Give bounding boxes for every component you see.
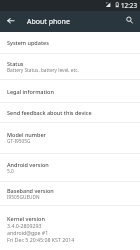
staticText: Battery Status, battery level, etc. bbox=[7, 67, 79, 73]
staticText: I9505GUEUDN bbox=[7, 194, 40, 200]
staticText: Kernel version bbox=[7, 215, 45, 222]
staticText: 5.0 bbox=[7, 168, 14, 174]
button[interactable]: Model number bbox=[0, 123, 140, 153]
staticText: 12:23 bbox=[121, 1, 137, 10]
staticText: Model number bbox=[7, 131, 46, 138]
button[interactable]: Search bbox=[119, 11, 140, 32]
button[interactable]: Kernel version bbox=[0, 206, 140, 250]
button[interactable]: Android version bbox=[0, 154, 140, 181]
button[interactable]: Send feedback about this device bbox=[0, 103, 140, 122]
staticText: Send feedback about this device bbox=[7, 109, 92, 116]
staticText: System updates bbox=[7, 39, 49, 46]
button[interactable]: Status bbox=[0, 54, 140, 79]
staticText: GT-I9505G bbox=[7, 138, 31, 144]
button[interactable]: Back bbox=[0, 11, 21, 32]
staticText: android@gpe #1 bbox=[7, 229, 49, 236]
staticText: About phone bbox=[27, 17, 70, 27]
staticText: Fri Dec 5 20:45:08 KST 2014 bbox=[7, 236, 75, 243]
staticText: 3.4.0-2809293 bbox=[7, 222, 42, 229]
staticText: Android version bbox=[7, 161, 49, 168]
button[interactable]: System updates bbox=[0, 32, 140, 53]
button[interactable]: Legal information bbox=[0, 80, 140, 102]
staticText: Baseband version bbox=[7, 187, 54, 194]
staticText: Legal information bbox=[7, 88, 54, 95]
staticText: Status bbox=[7, 60, 24, 67]
button[interactable]: Baseband version bbox=[0, 182, 140, 205]
